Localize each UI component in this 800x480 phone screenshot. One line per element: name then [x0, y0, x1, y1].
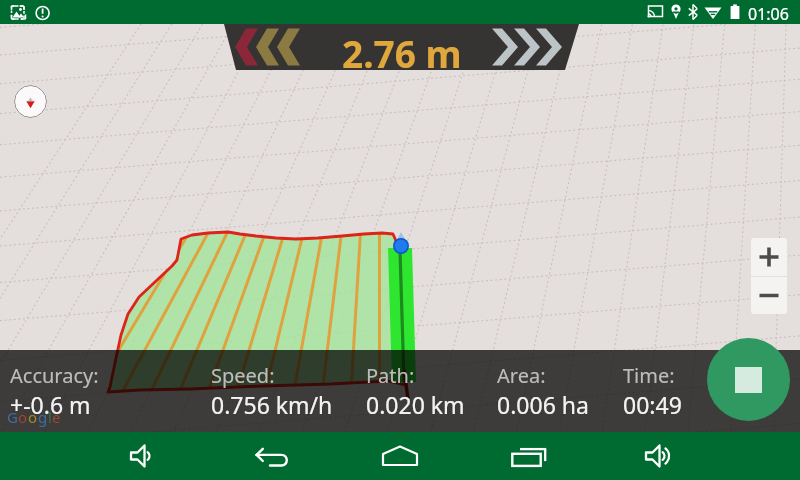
staticText: 2.76 m — [342, 28, 462, 78]
staticText: o — [18, 407, 28, 427]
staticText: Path: — [366, 362, 415, 389]
staticText: 0.756 km/h — [211, 389, 333, 420]
staticText: 01:06 — [748, 3, 789, 25]
button[interactable]: Zoom out — [751, 277, 787, 314]
staticText: Accuracy: — [10, 362, 99, 389]
staticText: o — [28, 407, 38, 427]
staticText: 0.020 km — [366, 389, 465, 420]
button[interactable]: Volume down — [118, 432, 166, 480]
staticText: l — [48, 407, 52, 427]
button[interactable]: Home — [376, 432, 424, 480]
staticText: e — [52, 407, 61, 427]
staticText: g — [38, 407, 48, 427]
button[interactable]: Zoom in — [751, 238, 787, 276]
staticText: Area: — [497, 362, 546, 389]
button[interactable]: Volume up — [633, 432, 681, 480]
staticText: G — [7, 407, 18, 427]
staticText: 00:49 — [623, 389, 682, 420]
staticText: 0.006 ha — [497, 389, 589, 420]
button[interactable]: Stop recording — [707, 338, 790, 421]
staticText: Speed: — [211, 362, 275, 389]
staticText: Time: — [623, 362, 675, 389]
button[interactable]: Back — [248, 432, 296, 480]
button[interactable]: Recent apps — [505, 432, 553, 480]
button[interactable]: Compass, reset orientation — [14, 85, 47, 118]
staticText: +-0.6 m — [10, 389, 91, 420]
